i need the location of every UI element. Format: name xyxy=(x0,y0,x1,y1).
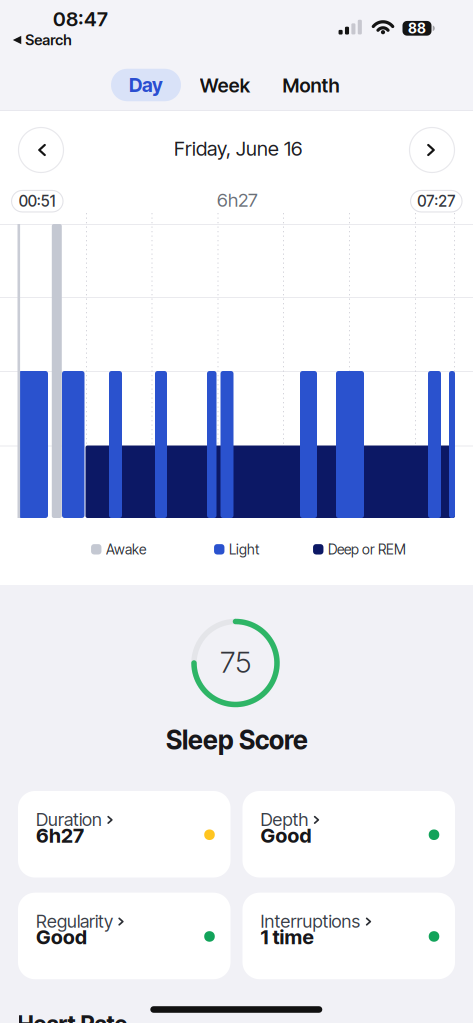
staticText: 75 xyxy=(220,644,251,680)
staticText: Sleep Score xyxy=(166,724,308,756)
button[interactable]: Month xyxy=(282,74,339,97)
staticText: Search xyxy=(25,31,71,49)
staticText: 08:47 xyxy=(53,7,108,31)
staticText: Good xyxy=(36,925,87,949)
staticText: Depth xyxy=(260,808,308,830)
staticText: Interruptions xyxy=(260,910,360,932)
staticText: Day xyxy=(129,73,163,97)
staticText: 07:27 xyxy=(417,192,455,210)
staticText: 00:51 xyxy=(19,192,56,210)
staticText: Month xyxy=(282,74,339,97)
button[interactable]: Regularity xyxy=(18,893,230,979)
staticText: Duration xyxy=(36,808,102,830)
staticText: Friday, June 16 xyxy=(174,136,302,161)
button[interactable]: Duration xyxy=(18,791,230,877)
staticText: 88 xyxy=(408,20,426,37)
staticText: Heart Rate xyxy=(17,1010,127,1023)
staticText: Awake xyxy=(106,541,146,558)
staticText: Regularity xyxy=(36,910,113,932)
button[interactable]: Day xyxy=(111,69,181,101)
staticText: Deep or REM xyxy=(328,541,406,558)
button[interactable]: Search xyxy=(13,31,71,49)
button[interactable]: Interruptions xyxy=(242,893,455,979)
button[interactable]: Previous day xyxy=(18,127,63,172)
staticText: 6h27 xyxy=(36,823,84,847)
button[interactable]: Week xyxy=(200,74,250,97)
staticText: Light xyxy=(229,541,259,558)
staticText: 1 time xyxy=(260,925,313,949)
staticText: Good xyxy=(260,823,311,847)
button[interactable]: Depth xyxy=(242,791,455,877)
button[interactable]: Next day xyxy=(409,127,454,172)
staticText: 6h27 xyxy=(217,189,258,211)
staticText: Week xyxy=(200,74,250,97)
